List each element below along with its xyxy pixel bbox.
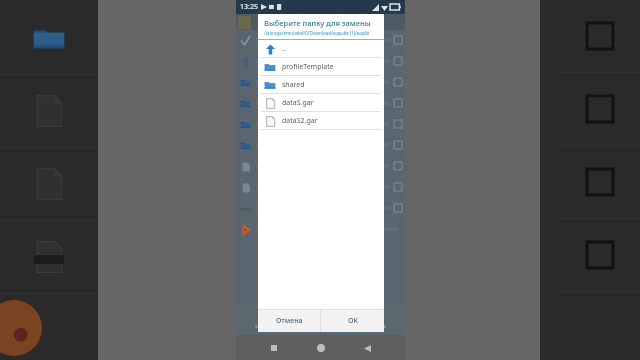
button[interactable]: Отмена <box>258 310 320 332</box>
button[interactable]: OK <box>321 310 384 332</box>
button[interactable]: Home <box>313 340 329 356</box>
button[interactable]: .. <box>258 40 384 57</box>
staticText: profileTemplate <box>282 62 334 72</box>
staticText: OK <box>348 316 358 326</box>
button[interactable]: shared <box>258 76 384 93</box>
button[interactable]: dataS.gar <box>258 94 384 111</box>
staticText: Выберите папку для замены <box>264 18 371 28</box>
button[interactable]: Back <box>359 340 375 356</box>
staticText: dataS2.gar <box>282 116 318 126</box>
staticText: /storage/emulated/0/Download/коды6е (1)/… <box>264 30 370 36</box>
staticText: .. <box>282 44 286 54</box>
staticText: 13:25 <box>240 2 258 12</box>
button[interactable]: profileTemplate <box>258 58 384 75</box>
staticText: Отмена <box>276 316 303 326</box>
button[interactable]: dataS2.gar <box>258 112 384 129</box>
button[interactable]: Recent apps <box>266 340 282 356</box>
staticText: dataS.gar <box>282 98 314 108</box>
staticText: shared <box>282 80 305 90</box>
